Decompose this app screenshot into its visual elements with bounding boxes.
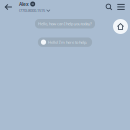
staticText: Alex xyxy=(19,1,29,7)
button[interactable]: Back xyxy=(2,0,15,13)
button[interactable]: Home xyxy=(113,19,128,34)
staticText: Hello, how can I help you today? xyxy=(38,21,92,26)
staticText: (770)-8000-1515 xyxy=(19,8,45,13)
button[interactable]: Menu xyxy=(115,1,127,13)
button[interactable]: Search xyxy=(103,1,115,13)
staticText: Hello! I'm here to help. xyxy=(48,39,87,45)
